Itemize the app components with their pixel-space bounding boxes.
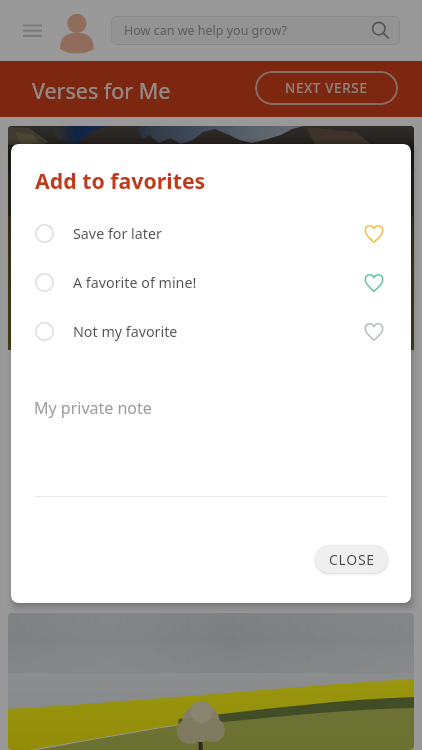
staticText: The Lord is my shepherd; I shall not wan… <box>26 409 396 475</box>
staticText: NEXT VERSE <box>285 79 368 97</box>
staticText: Verses for Me <box>32 76 171 105</box>
button[interactable]: CLOSE <box>315 545 388 573</box>
button[interactable]: Psalm 23 <box>8 126 414 600</box>
button[interactable]: Not my favorite <box>11 307 411 356</box>
staticText: My private note <box>34 397 152 419</box>
button[interactable]: Psalm 23 <box>8 613 414 750</box>
staticText: A favorite of mine! <box>73 273 197 292</box>
staticText: CLOSE <box>329 550 375 569</box>
staticText: How can we help you grow? <box>124 22 288 39</box>
button[interactable]: A favorite of mine! <box>11 258 411 307</box>
button[interactable]: Search <box>111 16 400 45</box>
button[interactable]: Save for later <box>11 209 411 258</box>
staticText: Add to favorites <box>35 166 206 195</box>
button[interactable]: Account <box>57 8 97 54</box>
staticText: Not my favorite <box>73 322 178 341</box>
button[interactable]: NEXT VERSE <box>255 71 398 105</box>
staticText: Save for later <box>73 224 162 243</box>
button[interactable]: Open navigation menu <box>17 18 48 44</box>
